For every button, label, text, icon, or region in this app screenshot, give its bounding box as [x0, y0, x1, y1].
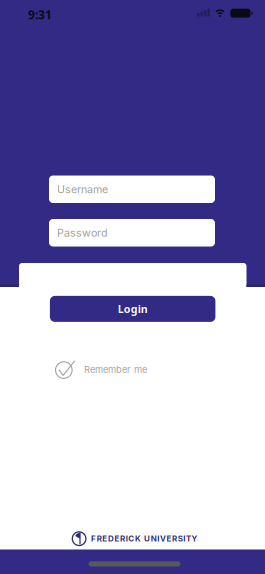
staticText: Username [57, 183, 108, 196]
secureTextField[interactable]: Password [57, 226, 215, 239]
staticText: 9:31 [28, 6, 52, 23]
button[interactable]: Remember me [55, 360, 147, 378]
staticText: FREDERICK UNIVERSITY [91, 534, 197, 544]
button[interactable]: Login [50, 296, 215, 322]
staticText: Password [57, 226, 108, 239]
textField[interactable]: Username [57, 183, 215, 196]
staticText: Login [118, 302, 148, 316]
staticText: Remember me [84, 364, 147, 375]
